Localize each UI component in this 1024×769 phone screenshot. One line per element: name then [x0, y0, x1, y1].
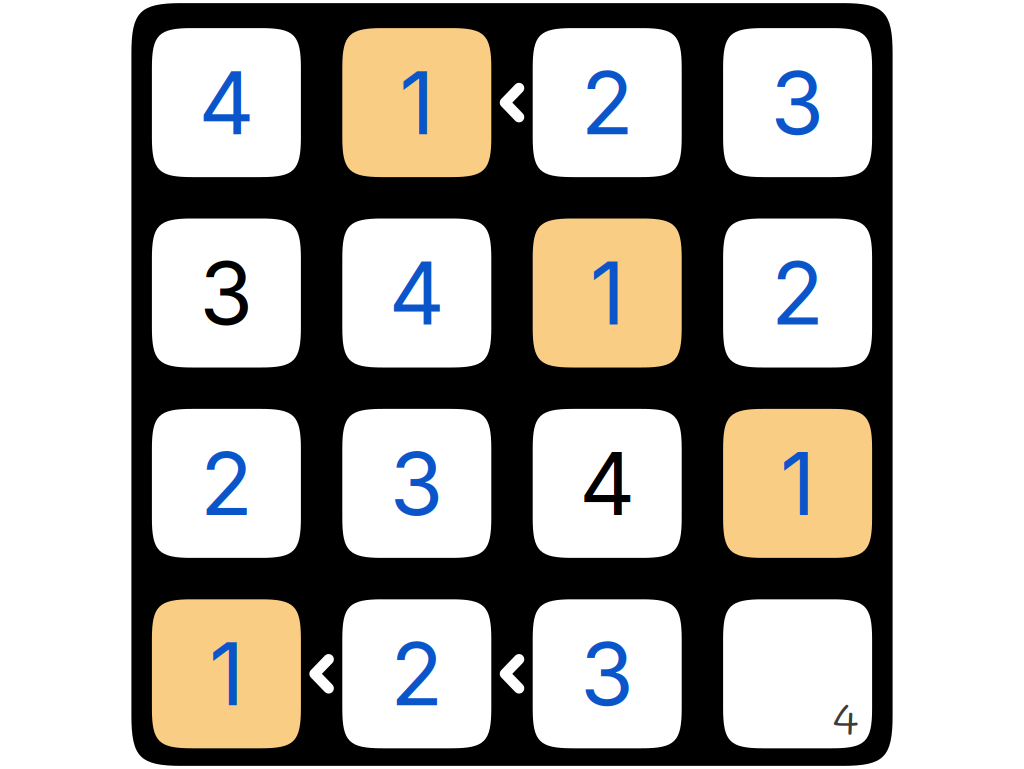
staticText: 4	[389, 241, 445, 345]
button[interactable]: Cell row 2 column 1, 3	[152, 218, 301, 367]
button[interactable]: Cell row 1 column 1, 4	[152, 28, 301, 177]
staticText: 4	[579, 431, 635, 536]
button[interactable]: Cell row 2 column 4, 2	[723, 218, 872, 367]
staticText: 3	[199, 241, 253, 345]
button[interactable]: Cell row 1 column 2, 1	[342, 28, 491, 177]
button[interactable]: Cell row 4 column 2, 2	[342, 599, 491, 748]
button[interactable]: Cell row 1 column 3, 2	[533, 28, 682, 177]
button[interactable]: Cell row 4 column 3, 3	[533, 599, 682, 748]
staticText: 2	[390, 621, 443, 726]
staticText: 2	[581, 50, 634, 155]
button[interactable]: Cell row 2 column 2, 4	[342, 218, 491, 367]
button[interactable]: Cell row 2 column 3, 1	[533, 218, 682, 367]
button[interactable]: Cell row 4 column 1, 1	[152, 599, 301, 748]
staticText: 2	[200, 431, 253, 536]
button[interactable]: Cell row 3 column 1, 2	[152, 409, 301, 558]
staticText: 1	[209, 621, 244, 726]
button[interactable]: Cell row 1 column 4, 3	[723, 28, 872, 177]
staticText: 1	[590, 241, 625, 345]
staticText: 1	[399, 50, 434, 155]
staticText: 3	[771, 50, 825, 155]
button[interactable]: Cell row 3 column 3, 4	[533, 409, 682, 558]
staticText: 1	[780, 431, 815, 536]
staticText: 4	[198, 50, 254, 155]
button[interactable]: Cell row 3 column 4, 1	[723, 409, 872, 558]
button[interactable]: Cell row 3 column 2, 3	[342, 409, 491, 558]
button[interactable]: Cell row 4 column 4, empty	[723, 599, 872, 748]
staticText: 3	[390, 431, 444, 536]
staticText: 3	[580, 621, 634, 726]
staticText: 4	[833, 690, 858, 745]
staticText: 2	[771, 241, 824, 345]
